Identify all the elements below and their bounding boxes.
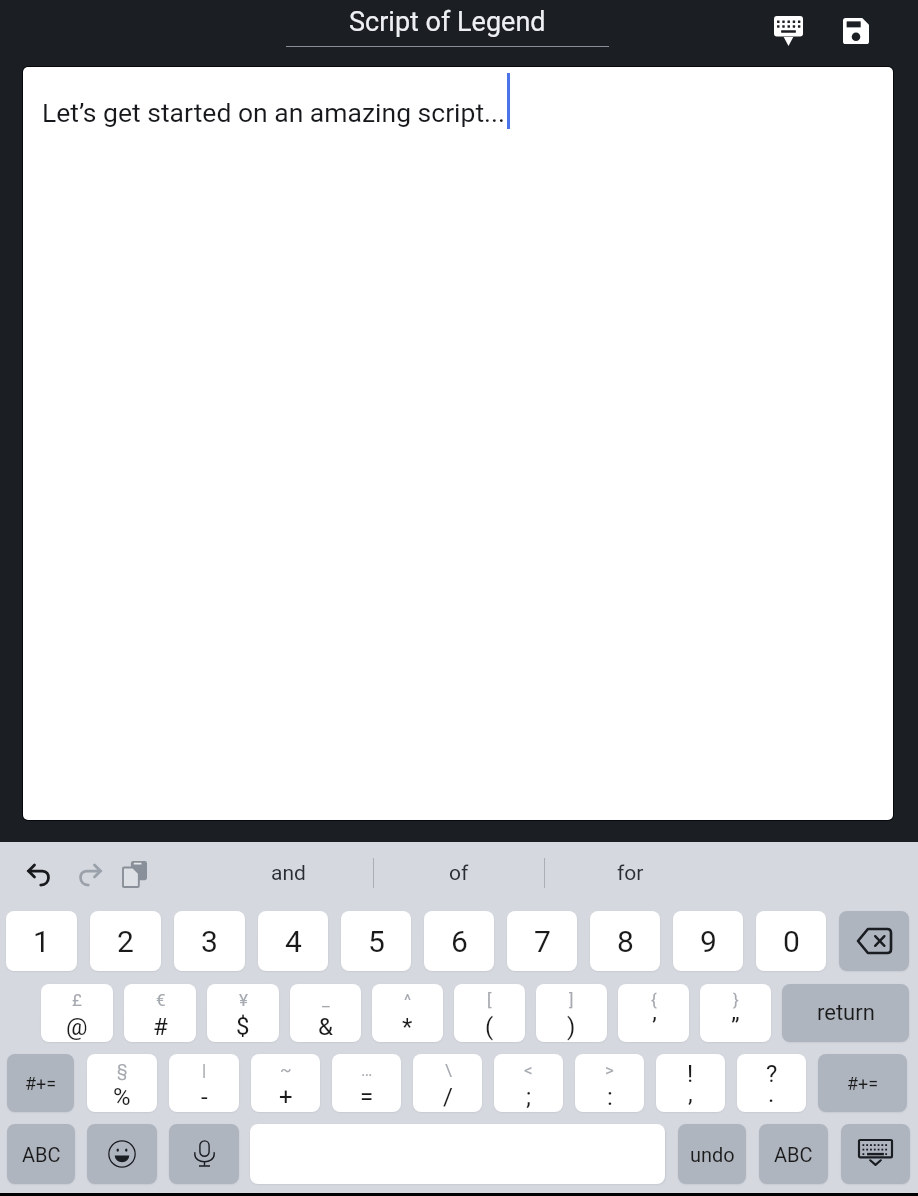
- button[interactable]: Undo: [18, 853, 60, 895]
- staticText: ?: [766, 1060, 778, 1088]
- button[interactable]: ¥: [207, 984, 279, 1042]
- staticText: +: [279, 1083, 293, 1111]
- staticText: .: [768, 1080, 775, 1108]
- staticText: (: [485, 1013, 494, 1041]
- button[interactable]: ABC: [759, 1124, 828, 1184]
- staticText: Script of Legend: [349, 6, 546, 38]
- staticText: ABC: [774, 1143, 813, 1166]
- staticText: ABC: [22, 1143, 61, 1166]
- button[interactable]: #+=: [7, 1054, 74, 1112]
- staticText: <: [524, 1060, 533, 1080]
- staticText: |: [202, 1060, 207, 1080]
- staticText: Let’s get started on an amazing script..…: [42, 97, 506, 128]
- staticText: ~: [280, 1060, 292, 1080]
- button[interactable]: 3: [174, 911, 245, 971]
- button[interactable]: Hide keyboard: [762, 5, 814, 57]
- button[interactable]: Save: [830, 5, 882, 57]
- staticText: >: [605, 1060, 614, 1080]
- staticText: &: [318, 1013, 333, 1041]
- staticText: @: [66, 1013, 88, 1041]
- button[interactable]: !: [656, 1054, 725, 1112]
- staticText: \: [445, 1060, 452, 1080]
- staticText: 9: [700, 924, 717, 959]
- staticText: 8: [617, 924, 634, 959]
- button[interactable]: Script of Legend: [286, 6, 609, 47]
- button[interactable]: of: [374, 848, 544, 898]
- button[interactable]: \: [413, 1054, 482, 1112]
- button[interactable]: }: [700, 984, 771, 1042]
- button[interactable]: 7: [507, 911, 577, 971]
- button[interactable]: 2: [90, 911, 161, 971]
- button[interactable]: Redo: [68, 853, 110, 895]
- button[interactable]: [169, 1124, 239, 1184]
- staticText: undo: [690, 1143, 735, 1166]
- button[interactable]: 4: [258, 911, 328, 971]
- button[interactable]: 6: [424, 911, 494, 971]
- staticText: /: [443, 1083, 453, 1111]
- button[interactable]: £: [41, 984, 113, 1042]
- staticText: ,: [688, 1080, 693, 1108]
- button[interactable]: Clipboard: [114, 853, 156, 895]
- staticText: _: [322, 990, 330, 1010]
- button[interactable]: >: [575, 1054, 644, 1112]
- button[interactable]: €: [124, 984, 196, 1042]
- button[interactable]: …: [332, 1054, 401, 1112]
- staticText: $: [236, 1013, 250, 1041]
- staticText: ): [567, 1013, 576, 1041]
- button[interactable]: [841, 1124, 910, 1184]
- button[interactable]: ]: [536, 984, 607, 1042]
- staticText: for: [617, 861, 644, 886]
- staticText: ;: [526, 1083, 532, 1111]
- button[interactable]: 8: [590, 911, 660, 971]
- staticText: ’: [652, 1013, 657, 1041]
- staticText: of: [449, 861, 469, 886]
- staticText: ^: [404, 990, 412, 1010]
- button[interactable]: 9: [673, 911, 743, 971]
- button[interactable]: |: [169, 1054, 239, 1112]
- button[interactable]: {: [618, 984, 689, 1042]
- button[interactable]: ?: [737, 1054, 806, 1112]
- staticText: :: [607, 1083, 613, 1111]
- staticText: 0: [783, 924, 800, 959]
- button[interactable]: ^: [372, 984, 443, 1042]
- button[interactable]: Let’s get started on an amazing script..…: [23, 67, 893, 820]
- button[interactable]: _: [290, 984, 361, 1042]
- button[interactable]: #+=: [818, 1054, 907, 1112]
- button[interactable]: for: [545, 848, 715, 898]
- button[interactable]: and: [203, 848, 373, 898]
- button[interactable]: §: [87, 1054, 157, 1112]
- button[interactable]: return: [782, 984, 909, 1042]
- staticText: #+=: [847, 1073, 879, 1094]
- staticText: 3: [201, 924, 218, 959]
- button[interactable]: <: [494, 1054, 563, 1112]
- button[interactable]: ~: [251, 1054, 320, 1112]
- staticText: 4: [285, 924, 302, 959]
- staticText: £: [72, 990, 82, 1010]
- button[interactable]: ABC: [7, 1124, 75, 1184]
- button[interactable]: [87, 1124, 157, 1184]
- staticText: ”: [731, 1013, 740, 1041]
- staticText: 1: [33, 924, 50, 959]
- staticText: 7: [534, 924, 551, 959]
- staticText: €: [156, 990, 166, 1010]
- staticText: 5: [368, 924, 385, 959]
- staticText: ¥: [239, 990, 248, 1010]
- staticText: #+=: [25, 1073, 57, 1094]
- button[interactable]: 5: [341, 911, 411, 971]
- staticText: 2: [117, 924, 134, 959]
- staticText: -: [201, 1083, 208, 1111]
- button[interactable]: [: [454, 984, 525, 1042]
- staticText: *: [402, 1013, 413, 1041]
- button[interactable]: 1: [6, 911, 77, 971]
- button[interactable]: 0: [756, 911, 826, 971]
- staticText: 6: [451, 924, 468, 959]
- staticText: and: [271, 861, 306, 886]
- staticText: §: [117, 1060, 128, 1080]
- staticText: ]: [569, 990, 574, 1010]
- staticText: …: [361, 1060, 373, 1080]
- staticText: !: [687, 1060, 694, 1088]
- button[interactable]: [839, 911, 909, 971]
- button[interactable]: undo: [678, 1124, 746, 1184]
- staticText: #: [153, 1013, 168, 1041]
